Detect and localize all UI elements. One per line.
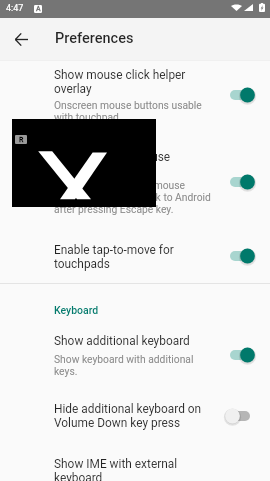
staticText: R xyxy=(19,136,24,144)
staticText: A xyxy=(36,5,41,13)
button[interactable]: Show additional keyboard xyxy=(0,324,270,389)
staticText: Preferences xyxy=(55,30,134,47)
button[interactable]: Hide additional keyboard on Volume Down … xyxy=(0,389,270,445)
staticText: Show additional keyboard xyxy=(54,334,217,348)
staticText: Onscreen mouse buttons usable with touch… xyxy=(54,99,217,123)
staticText: Show mouse click helper overlay xyxy=(54,68,217,96)
staticText: Keyboard xyxy=(54,304,99,316)
staticText: Show keyboard with additional keys. xyxy=(54,353,217,377)
button[interactable]: Enable relative mouse xyxy=(0,127,270,223)
staticText: Enable relative mouse xyxy=(54,150,217,164)
button[interactable]: Navigate up xyxy=(7,25,35,53)
staticText: Allows to use relative mouse mode. You c… xyxy=(54,179,217,215)
button[interactable]: Show IME with external keyboard xyxy=(0,445,270,481)
staticText: Hide additional keyboard on Volume Down … xyxy=(54,402,217,430)
button[interactable]: Show mouse click helper overlay xyxy=(0,61,270,127)
staticText: Show IME with external keyboard xyxy=(54,457,217,481)
staticText: 4:47 xyxy=(6,3,24,14)
button[interactable]: Enable tap-to-move for touchpads xyxy=(0,223,270,283)
staticText: Enable tap-to-move for touchpads xyxy=(54,243,217,271)
